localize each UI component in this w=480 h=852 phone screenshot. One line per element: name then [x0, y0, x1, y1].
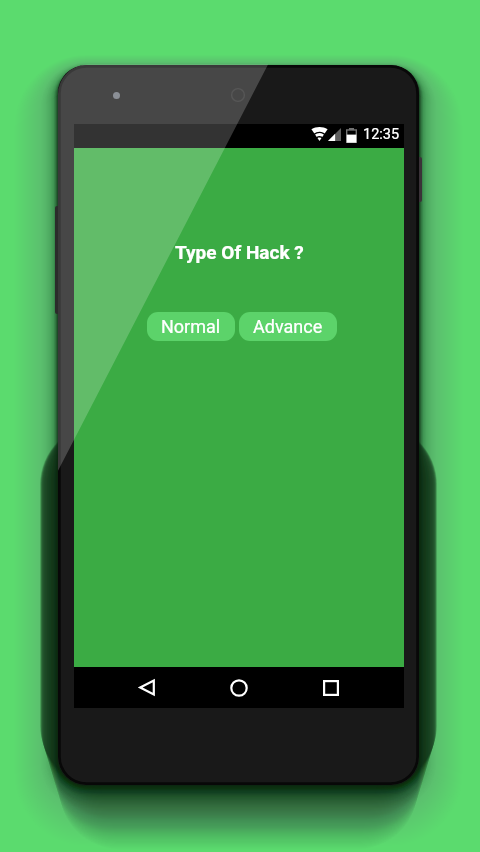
- staticText: Normal: [161, 316, 221, 337]
- button[interactable]: Advance: [239, 312, 337, 341]
- staticText: Advance: [253, 316, 323, 337]
- staticText: 12:35: [363, 126, 400, 143]
- button[interactable]: Home: [215, 667, 263, 708]
- button[interactable]: Recents: [307, 667, 355, 708]
- staticText: Type Of Hack ?: [175, 241, 304, 263]
- button[interactable]: Back: [123, 667, 171, 708]
- button[interactable]: Normal: [147, 312, 235, 341]
